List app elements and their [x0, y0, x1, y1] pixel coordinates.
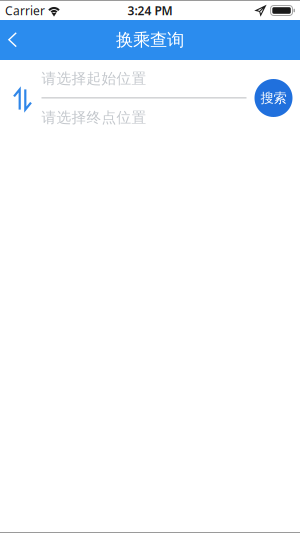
staticText: 3:24 PM	[127, 2, 172, 18]
button[interactable]: Swap start and end	[0, 60, 41, 134]
staticText: 搜索	[260, 90, 286, 106]
button[interactable]: 请选择起始位置	[41, 60, 246, 97]
button[interactable]: Back	[0, 20, 33, 60]
button[interactable]: 请选择终点位置	[41, 99, 246, 137]
staticText: 换乘查询	[116, 29, 184, 51]
staticText: Carrier	[5, 2, 45, 18]
staticText: 请选择起始位置	[41, 69, 146, 87]
button[interactable]: 搜索	[254, 77, 292, 117]
staticText: 请选择终点位置	[41, 109, 146, 127]
